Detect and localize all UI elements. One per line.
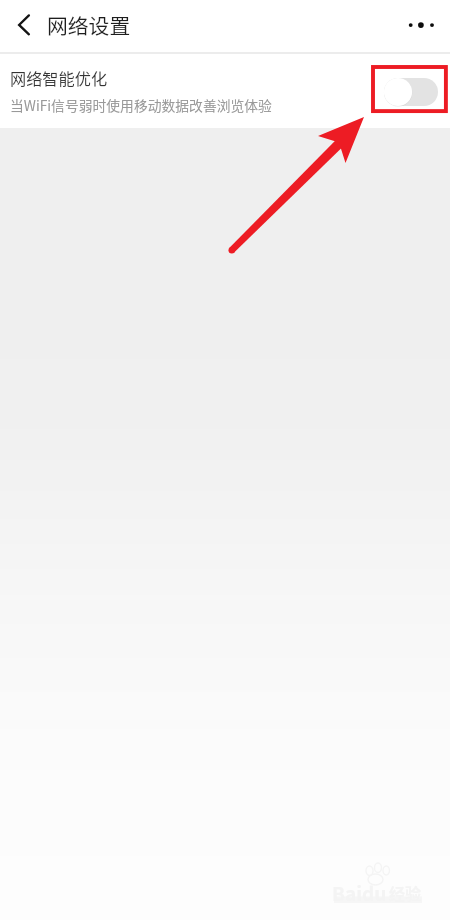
button[interactable]: Back (0, 0, 46, 54)
staticText: 当WiFi信号弱时使用移动数据改善浏览体验 (10, 95, 272, 115)
staticText: Baidu (332, 879, 387, 907)
button[interactable]: 网络智能优化 (0, 54, 450, 128)
staticText: 网络设置 (47, 10, 131, 40)
button[interactable]: More options (398, 0, 450, 54)
button[interactable]: Toggle network optimization (384, 78, 438, 106)
staticText: 网络智能优化 (10, 66, 108, 89)
staticText: 经验 (389, 881, 422, 904)
